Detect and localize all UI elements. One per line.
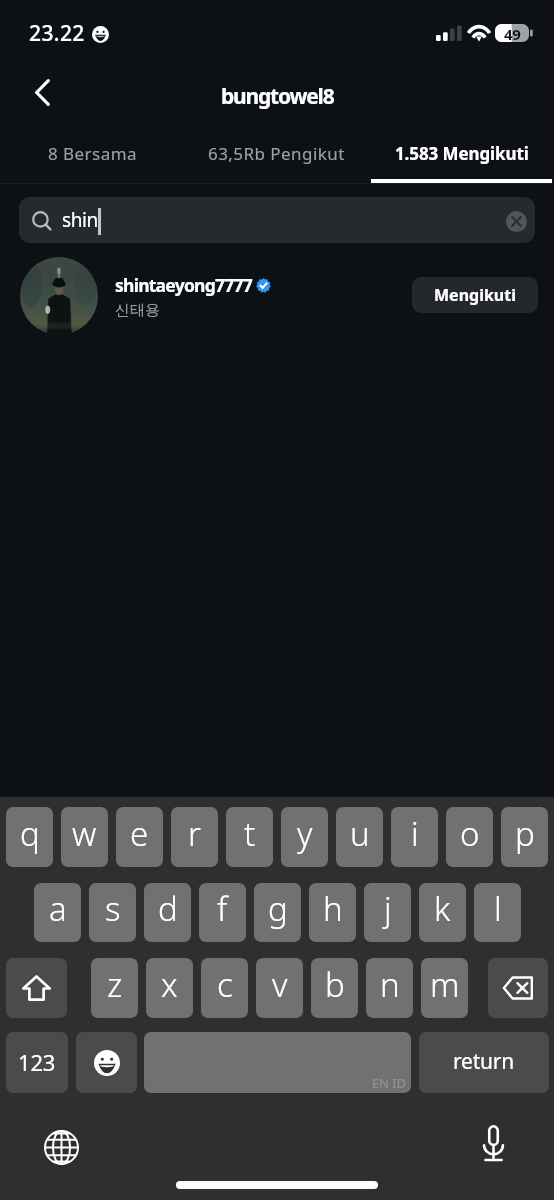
button[interactable]: v xyxy=(256,958,303,1018)
button[interactable]: o xyxy=(446,807,493,867)
button[interactable]: 63,5Rb Pengikut xyxy=(184,128,369,184)
staticText: bungtowel8 xyxy=(221,82,334,111)
button[interactable]: h xyxy=(309,883,356,942)
button[interactable]: n xyxy=(366,958,413,1018)
button[interactable]: 1.583 Mengikuti xyxy=(369,128,554,184)
button[interactable]: return xyxy=(419,1032,549,1093)
button[interactable]: w xyxy=(61,807,108,867)
button[interactable]: x xyxy=(146,958,193,1018)
staticText: f xyxy=(217,886,228,931)
staticText: shintaeyong7777 xyxy=(115,273,253,297)
staticText: n xyxy=(380,962,400,1007)
staticText: z xyxy=(107,962,123,1007)
staticText: s xyxy=(105,886,121,931)
button[interactable]: 123 xyxy=(6,1032,68,1093)
staticText: j xyxy=(384,886,392,931)
staticText: c xyxy=(217,962,233,1007)
button[interactable]: i xyxy=(391,807,438,867)
staticText: r xyxy=(188,811,202,856)
staticText: y xyxy=(297,811,313,856)
staticText: h xyxy=(323,886,343,931)
button[interactable]: g xyxy=(254,883,301,942)
staticText: i xyxy=(411,811,419,856)
staticText: v xyxy=(272,962,288,1007)
staticText: 23.22 xyxy=(29,19,85,48)
button[interactable]: p xyxy=(501,807,548,867)
staticText: l xyxy=(494,886,502,931)
button[interactable]: Emoji keyboard xyxy=(76,1032,137,1093)
button[interactable]: t xyxy=(226,807,273,867)
button[interactable]: Back xyxy=(18,70,64,116)
staticText: 8 Bersama xyxy=(48,142,137,165)
button[interactable]: Backspace xyxy=(488,958,548,1018)
button[interactable]: Change keyboard language xyxy=(41,1127,81,1167)
staticText: 123 xyxy=(18,1047,56,1077)
button[interactable]: f xyxy=(199,883,246,942)
staticText: 49 xyxy=(504,24,521,42)
staticText: x xyxy=(161,962,178,1007)
button[interactable]: k xyxy=(419,883,466,942)
staticText: o xyxy=(460,811,480,856)
button[interactable]: u xyxy=(336,807,383,867)
staticText: d xyxy=(158,886,178,931)
button[interactable]: m xyxy=(421,958,468,1018)
staticText: e xyxy=(130,811,149,856)
staticText: Mengikuti xyxy=(434,284,516,306)
button[interactable]: y xyxy=(281,807,328,867)
button[interactable]: s xyxy=(89,883,136,942)
staticText: EN ID xyxy=(372,1074,406,1092)
button[interactable]: Dictation xyxy=(473,1124,513,1164)
staticText: 신태용 xyxy=(115,301,160,320)
button[interactable]: q xyxy=(6,807,53,867)
staticText: q xyxy=(20,811,40,856)
staticText: g xyxy=(268,886,288,931)
button[interactable]: Clear text xyxy=(506,211,527,232)
button[interactable]: l xyxy=(474,883,521,942)
button[interactable]: 8 Bersama xyxy=(0,128,184,184)
button[interactable]: Mengikuti xyxy=(412,277,538,313)
button[interactable]: Space xyxy=(144,1032,411,1093)
staticText: m xyxy=(430,962,460,1007)
staticText: return xyxy=(453,1047,515,1076)
button[interactable]: e xyxy=(116,807,163,867)
button[interactable]: a xyxy=(34,883,81,942)
button[interactable]: d xyxy=(144,883,191,942)
staticText: p xyxy=(515,811,535,856)
staticText: w xyxy=(72,811,97,856)
button[interactable]: shintaeyong7777 xyxy=(0,256,554,336)
staticText: b xyxy=(325,962,345,1007)
staticText: 1.583 Mengikuti xyxy=(395,142,529,165)
staticText: shin xyxy=(62,207,98,233)
button[interactable]: b xyxy=(311,958,358,1018)
staticText: k xyxy=(434,886,451,931)
button[interactable]: j xyxy=(364,883,411,942)
button[interactable]: c xyxy=(201,958,248,1018)
staticText: 63,5Rb Pengikut xyxy=(208,142,345,165)
button[interactable]: z xyxy=(91,958,138,1018)
staticText: t xyxy=(244,811,256,856)
staticText: a xyxy=(49,886,67,931)
button[interactable]: Shift xyxy=(6,958,67,1018)
staticText: u xyxy=(350,811,370,856)
button[interactable]: shin xyxy=(19,197,535,243)
button[interactable]: r xyxy=(171,807,218,867)
